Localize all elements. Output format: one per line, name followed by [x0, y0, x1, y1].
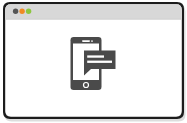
button[interactable]: Mobile messaging app window: [0, 0, 187, 123]
